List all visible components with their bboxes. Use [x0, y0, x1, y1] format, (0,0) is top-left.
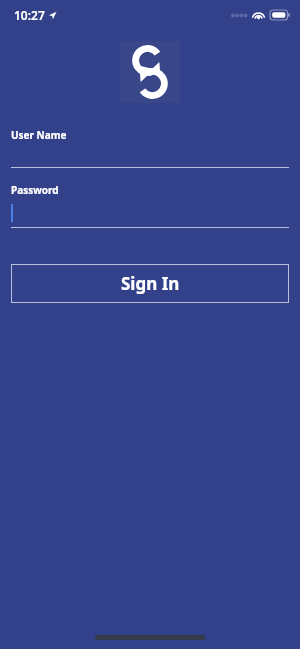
staticText: User Name	[11, 128, 67, 142]
staticText: 10:27	[14, 7, 45, 23]
staticText: Sign In	[121, 272, 180, 295]
other: App logo	[130, 48, 170, 96]
button[interactable]: Sign In	[11, 264, 289, 303]
staticText: Password	[11, 183, 59, 197]
